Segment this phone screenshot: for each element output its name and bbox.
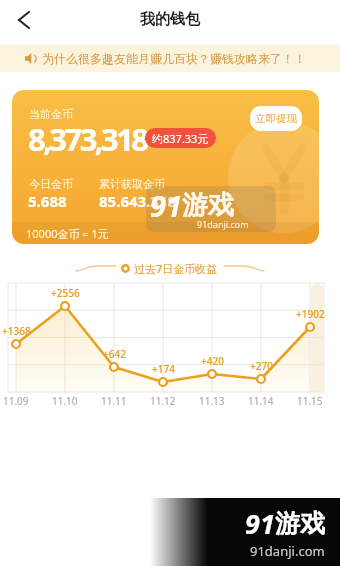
staticText: 11.10: [52, 394, 78, 407]
staticText: 约837.33元: [152, 131, 209, 146]
staticText: 91: [150, 186, 182, 225]
staticText: +1902: [296, 307, 325, 319]
button[interactable]: [8, 4, 40, 36]
button[interactable]: 为什么很多趣友能月赚几百块？赚钱攻略来了！！: [0, 45, 340, 72]
staticText: 11.14: [248, 394, 274, 407]
staticText: +420: [201, 354, 224, 366]
staticText: 今日金币: [29, 177, 73, 191]
staticText: 91danji.com: [250, 542, 325, 560]
staticText: 11.12: [150, 394, 176, 407]
staticText: 立即提现: [255, 112, 297, 125]
staticText: 11.13: [199, 394, 225, 407]
button[interactable]: 约837.33元: [145, 128, 216, 148]
staticText: 8,373,318: [28, 118, 147, 160]
staticText: 为什么很多趣友能月赚几百块？赚钱攻略来了！！: [42, 51, 306, 66]
button[interactable]: 当前金币: [12, 90, 319, 244]
staticText: +1368: [2, 324, 31, 336]
staticText: 过去7日金币收益: [134, 261, 218, 276]
staticText: 11.11: [101, 394, 127, 407]
staticText: 当前金币: [29, 107, 73, 121]
staticText: +270: [250, 359, 273, 371]
staticText: 11.09: [3, 394, 29, 407]
staticText: 10000金币 = 1元: [26, 226, 109, 241]
staticText: +174: [152, 362, 175, 374]
staticText: 85.643.318: [99, 191, 177, 211]
button[interactable]: 立即提现: [250, 106, 302, 131]
staticText: 11.15: [297, 394, 323, 407]
staticText: 我的钱包: [140, 10, 200, 29]
staticText: 游戏: [275, 508, 325, 539]
staticText: +642: [103, 347, 126, 359]
staticText: 游戏: [182, 189, 234, 222]
staticText: 91danji.com: [197, 218, 249, 230]
staticText: 累计获取金币: [99, 177, 165, 191]
staticText: 91: [245, 505, 275, 542]
staticText: +2556: [51, 286, 80, 298]
staticText: 5.688: [28, 191, 67, 211]
